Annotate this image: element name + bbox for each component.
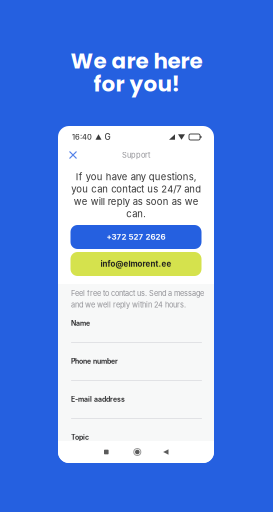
staticText: Topic bbox=[71, 433, 89, 441]
staticText: Name bbox=[71, 319, 90, 327]
button[interactable]: Phone number bbox=[71, 357, 202, 395]
button[interactable]: Back bbox=[158, 444, 173, 459]
staticText: If you have any questions, you can conta… bbox=[71, 171, 201, 219]
staticText: Phone number bbox=[71, 357, 118, 365]
button[interactable]: Name bbox=[71, 319, 202, 357]
staticText: E-mail aaddress bbox=[71, 395, 125, 403]
button[interactable]: Recent apps bbox=[99, 444, 114, 459]
button[interactable]: +372 527 2626 bbox=[70, 225, 201, 249]
staticText: info@elmorent.ee bbox=[100, 259, 171, 269]
staticText: G bbox=[104, 132, 110, 142]
staticText: 16:40 bbox=[72, 132, 92, 141]
staticText: for you! bbox=[93, 69, 179, 99]
staticText: We are here bbox=[70, 46, 202, 76]
staticText: Feel free to contact us. Send a message … bbox=[71, 289, 204, 309]
staticText: Support bbox=[122, 150, 150, 159]
button[interactable]: Close bbox=[64, 146, 82, 164]
button[interactable]: E-mail aaddress bbox=[71, 395, 202, 433]
button[interactable]: info@elmorent.ee bbox=[70, 252, 201, 276]
button[interactable]: Home bbox=[130, 444, 145, 459]
staticText: +372 527 2626 bbox=[106, 232, 165, 242]
